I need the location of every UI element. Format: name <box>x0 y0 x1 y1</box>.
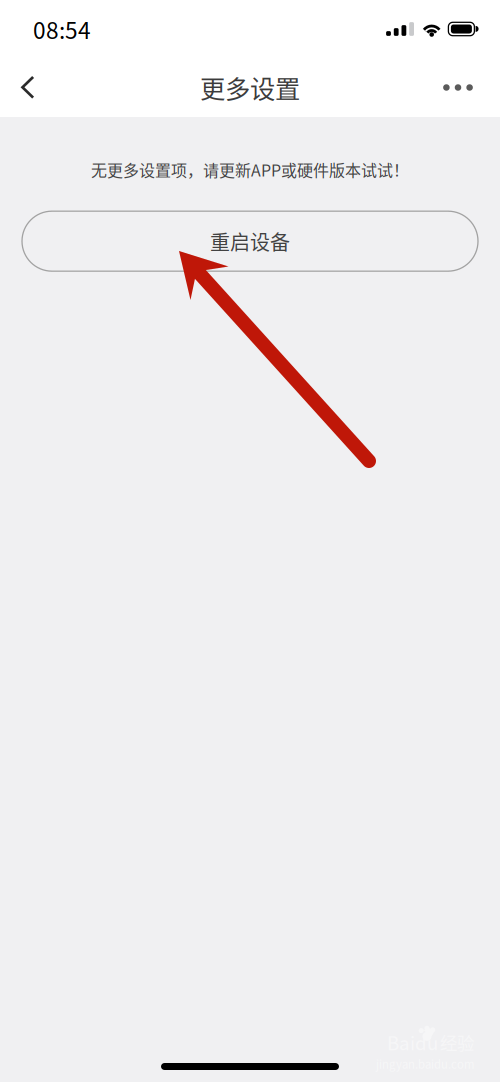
button[interactable]: More options <box>435 64 481 110</box>
button[interactable]: Back <box>5 64 51 110</box>
staticText: 08:54 <box>33 13 91 45</box>
staticText: 无更多设置项，请更新APP或硬件版本试试！ <box>91 158 409 181</box>
staticText: 更多设置 <box>200 69 300 106</box>
button[interactable]: 重启设备 <box>22 211 478 271</box>
staticText: 重启设备 <box>210 227 290 256</box>
